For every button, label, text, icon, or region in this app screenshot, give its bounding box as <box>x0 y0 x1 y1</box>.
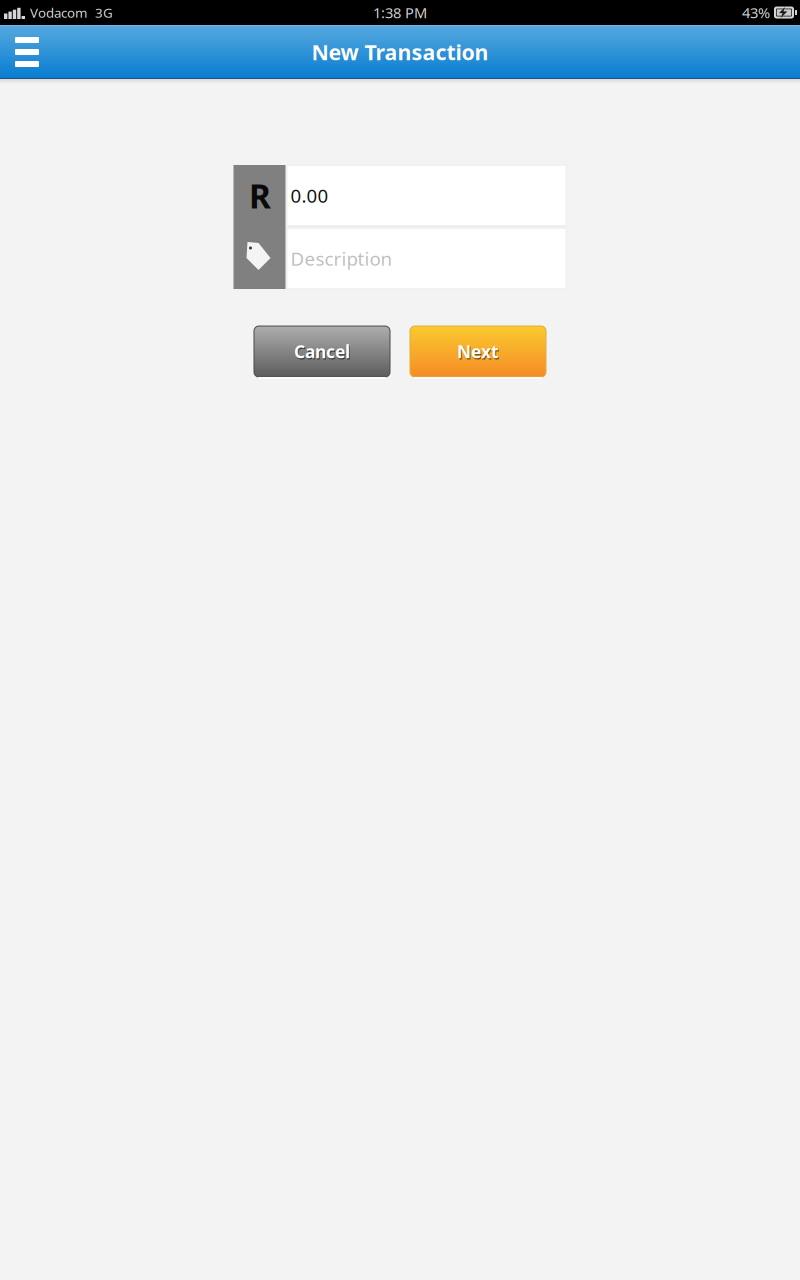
staticText: Cancel <box>295 341 351 364</box>
button[interactable]: Next <box>410 326 546 379</box>
button[interactable]: Cancel <box>254 326 390 379</box>
staticText: Next <box>457 340 499 363</box>
staticText: 43% <box>742 3 770 22</box>
staticText: 3G <box>95 4 113 21</box>
staticText: Description <box>290 246 392 271</box>
button[interactable]: Menu <box>0 25 54 79</box>
staticText: Vodacom <box>30 4 87 21</box>
staticText: 0.00 <box>290 183 328 208</box>
button[interactable]: 0.00 <box>286 165 566 226</box>
staticText: New Transaction <box>311 38 488 66</box>
staticText: R <box>249 173 271 218</box>
button[interactable]: Description <box>286 228 566 289</box>
staticText: 1:38 PM <box>373 3 427 22</box>
staticText: Cancel <box>294 340 350 363</box>
staticText: Next <box>458 341 500 364</box>
